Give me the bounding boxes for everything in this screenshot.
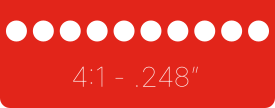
staticText: 4:1 - .248” <box>71 59 198 93</box>
